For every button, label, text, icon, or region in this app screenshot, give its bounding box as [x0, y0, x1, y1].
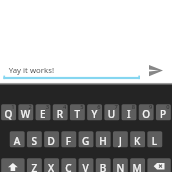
button[interactable]: Q: [1, 104, 15, 120]
button[interactable]: A: [9, 131, 23, 147]
button[interactable]: F: [61, 131, 75, 147]
button[interactable]: Backspace: [147, 158, 170, 172]
button[interactable]: Message input, Yay it works!: [3, 57, 141, 79]
button[interactable]: L: [147, 131, 161, 147]
button[interactable]: B: [95, 158, 109, 172]
button[interactable]: N: [112, 158, 126, 172]
button[interactable]: V: [78, 158, 92, 172]
button[interactable]: G: [78, 131, 92, 147]
button[interactable]: Send: [143, 58, 169, 84]
button[interactable]: J: [112, 131, 126, 147]
button[interactable]: W: [18, 104, 32, 120]
button[interactable]: Z: [26, 158, 40, 172]
button[interactable]: C: [61, 158, 75, 172]
button[interactable]: R: [52, 104, 66, 120]
button[interactable]: S: [26, 131, 40, 147]
button[interactable]: M: [130, 158, 144, 172]
button[interactable]: P: [155, 104, 169, 120]
button[interactable]: T: [69, 104, 83, 120]
button[interactable]: E: [35, 104, 49, 120]
button[interactable]: D: [44, 131, 58, 147]
button[interactable]: X: [44, 158, 58, 172]
button[interactable]: Shift: [1, 158, 24, 172]
button[interactable]: Y: [87, 104, 101, 120]
button[interactable]: I: [121, 104, 135, 120]
button[interactable]: H: [95, 131, 109, 147]
button[interactable]: U: [104, 104, 118, 120]
button[interactable]: K: [130, 131, 144, 147]
button[interactable]: O: [138, 104, 152, 120]
